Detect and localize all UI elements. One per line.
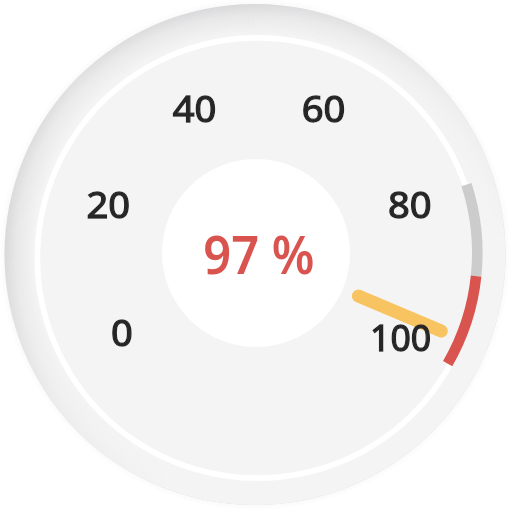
button[interactable]: Usage gauge, 97 percent <box>0 0 513 513</box>
